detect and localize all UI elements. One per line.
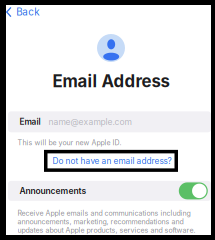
staticText: This will be your new Apple ID. (17, 138, 121, 147)
staticText: name@example.com (48, 117, 131, 127)
staticText: Back (16, 6, 39, 18)
staticText: Do not have an email address? (52, 156, 171, 166)
staticText: Receive Apple emails and communications … (17, 209, 195, 234)
staticText: Email (19, 117, 40, 127)
staticText: Announcements (19, 186, 86, 196)
button[interactable]: Do not have an email address? (44, 150, 178, 172)
staticText: Email Address (52, 71, 169, 91)
button[interactable]: Back (6, 5, 39, 19)
